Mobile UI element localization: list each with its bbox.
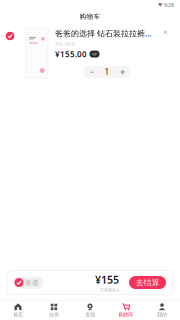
button[interactable]: Remove item [161, 28, 170, 37]
staticText: XXL,40片 [55, 40, 76, 47]
button[interactable]: Decrease quantity [84, 66, 99, 78]
staticText: 全选 [25, 278, 39, 287]
button[interactable]: 购物车 [108, 301, 144, 320]
button[interactable]: 全选 [13, 276, 44, 288]
staticText: 我的 [157, 311, 167, 318]
staticText: 首页 [13, 311, 23, 318]
staticText: 爸爸的选择 钻石装拉拉裤… [55, 28, 151, 39]
staticText: ¥155.00 [55, 49, 87, 59]
staticText: 1 [104, 67, 109, 77]
staticText: 购物车 [79, 12, 100, 21]
staticText: 分类 [49, 311, 59, 318]
button[interactable]: 分类 [36, 301, 72, 320]
staticText: VIP [92, 51, 97, 57]
button[interactable]: 去结算 [129, 276, 166, 289]
button[interactable]: 发现 [72, 301, 108, 320]
button[interactable]: Increase quantity [115, 66, 130, 78]
staticText: 发现 [85, 311, 95, 318]
staticText: + [120, 66, 125, 78]
staticText: 已优惠¥0.0 [100, 287, 119, 292]
staticText: 去结算 [135, 278, 159, 287]
staticText: 购物车 [118, 311, 133, 318]
button[interactable]: 我的 [144, 301, 180, 320]
staticText: − [89, 66, 94, 78]
staticText: ¥155 [95, 272, 119, 287]
button[interactable]: Select item [3, 29, 17, 43]
button[interactable]: 首页 [0, 301, 36, 320]
staticText: ✕ [162, 29, 168, 36]
staticText: 9:28 [164, 1, 174, 9]
